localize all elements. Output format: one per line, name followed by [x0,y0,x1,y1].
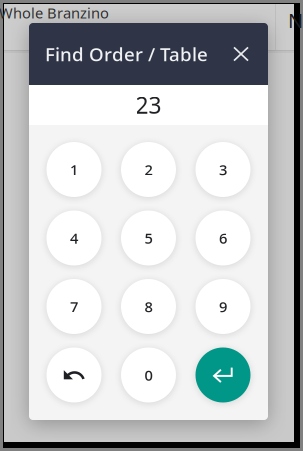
staticText: 9 [219,297,227,316]
button[interactable]: Close [225,38,257,70]
staticText: 8 [144,297,152,316]
button[interactable]: 4 [46,210,101,265]
button[interactable]: 6 [195,210,250,265]
button[interactable]: 7 [46,279,101,334]
staticText: 2 [144,160,152,179]
button[interactable]: Undo [46,347,101,402]
staticText: 3 [219,160,227,179]
staticText: Whole Branzino [0,3,109,22]
staticText: 1 [70,160,78,179]
button[interactable]: Enter [195,347,250,402]
button[interactable]: 8 [121,279,176,334]
staticText: 4 [70,228,78,248]
staticText: 5 [144,228,152,248]
staticText: 0 [144,365,152,385]
staticText: N [288,7,303,34]
staticText: 23 [135,90,161,120]
button[interactable]: 9 [195,279,250,334]
button[interactable]: 0 [121,347,176,402]
staticText: 6 [219,228,227,248]
staticText: Find Order / Table [45,42,208,66]
button[interactable]: 5 [121,210,176,265]
button[interactable]: 1 [46,142,101,197]
button[interactable]: 3 [195,142,250,197]
staticText: 7 [70,297,78,316]
button[interactable]: 2 [121,142,176,197]
